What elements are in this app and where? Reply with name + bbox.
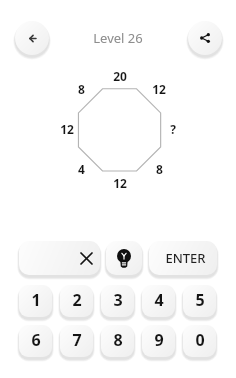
button[interactable]: Hint: [106, 241, 142, 275]
staticText: 12: [152, 81, 166, 97]
staticText: 8: [156, 161, 163, 177]
button[interactable]: ENTER: [149, 241, 217, 275]
button[interactable]: 4: [142, 285, 175, 317]
button[interactable]: 5: [183, 285, 216, 317]
button[interactable]: Back: [15, 21, 49, 55]
staticText: 9: [154, 329, 164, 351]
button[interactable]: 2: [60, 285, 93, 317]
staticText: 5: [195, 289, 205, 311]
staticText: ?: [170, 121, 176, 137]
staticText: ENTER: [165, 249, 206, 267]
staticText: 2: [72, 289, 82, 311]
button[interactable]: Share: [188, 21, 222, 55]
button[interactable]: Clear: [19, 241, 100, 275]
staticText: 12: [113, 175, 127, 191]
button[interactable]: 3: [101, 285, 134, 317]
staticText: 12: [60, 121, 74, 137]
staticText: 1: [31, 289, 41, 311]
staticText: 3: [113, 289, 123, 311]
button[interactable]: 0: [183, 325, 216, 357]
staticText: 4: [154, 289, 164, 311]
staticText: Level 26: [93, 29, 143, 47]
button[interactable]: 9: [142, 325, 175, 357]
staticText: 0: [195, 329, 205, 351]
staticText: 7: [72, 329, 82, 351]
staticText: 4: [78, 161, 85, 177]
button[interactable]: 6: [19, 325, 52, 357]
staticText: 8: [113, 329, 123, 351]
button[interactable]: 1: [19, 285, 52, 317]
button[interactable]: 7: [60, 325, 93, 357]
staticText: 20: [113, 68, 127, 84]
button[interactable]: 8: [101, 325, 134, 357]
staticText: 8: [78, 81, 85, 97]
staticText: 6: [31, 329, 41, 351]
